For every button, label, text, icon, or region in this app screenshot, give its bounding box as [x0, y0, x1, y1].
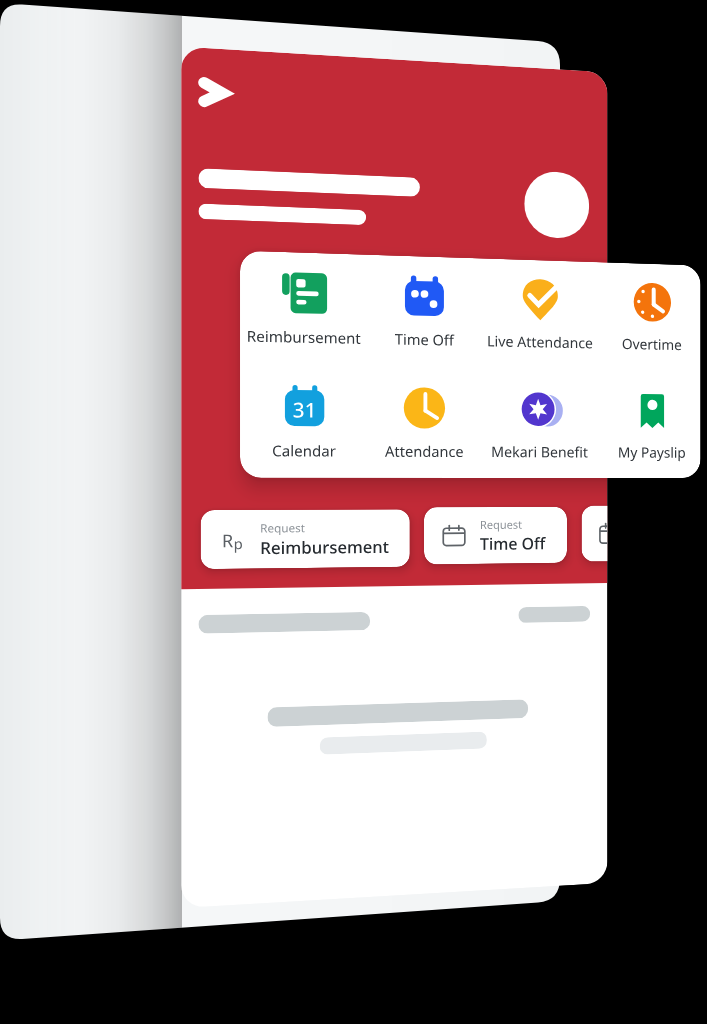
staticText: Live Attendance	[487, 330, 593, 352]
button[interactable]: R	[201, 509, 410, 569]
staticText: Reimbursement	[246, 325, 361, 348]
other: Talenta logo	[198, 77, 228, 108]
button[interactable]: Overtime	[597, 279, 701, 363]
staticText: Attendance	[384, 440, 464, 461]
staticText: Request	[260, 520, 305, 536]
button[interactable]: My Payslip	[597, 388, 701, 470]
button[interactable]: Request	[424, 507, 567, 565]
staticText: Time Off	[395, 328, 454, 350]
staticText: Overtime	[622, 333, 682, 354]
button[interactable]: 31	[243, 383, 364, 470]
staticText: Mekari Benefit	[491, 441, 588, 461]
button[interactable]: Profile	[524, 170, 589, 239]
staticText: Request	[480, 517, 522, 532]
staticText: Reimbursement	[260, 536, 390, 559]
staticText: 31	[293, 396, 317, 424]
button[interactable]: Reimbursement	[243, 268, 364, 357]
button[interactable]: Attendance	[365, 384, 482, 470]
staticText: Time Off	[480, 532, 546, 555]
staticText: R	[222, 528, 234, 552]
staticText: My Payslip	[618, 442, 686, 462]
button[interactable]: Time Off	[365, 272, 482, 359]
staticText: p	[234, 534, 243, 553]
button[interactable]: Request	[581, 505, 607, 562]
staticText: Calendar	[272, 440, 336, 461]
button[interactable]: Live Attendance	[483, 275, 596, 361]
button[interactable]: Mekari Benefit	[483, 386, 596, 470]
